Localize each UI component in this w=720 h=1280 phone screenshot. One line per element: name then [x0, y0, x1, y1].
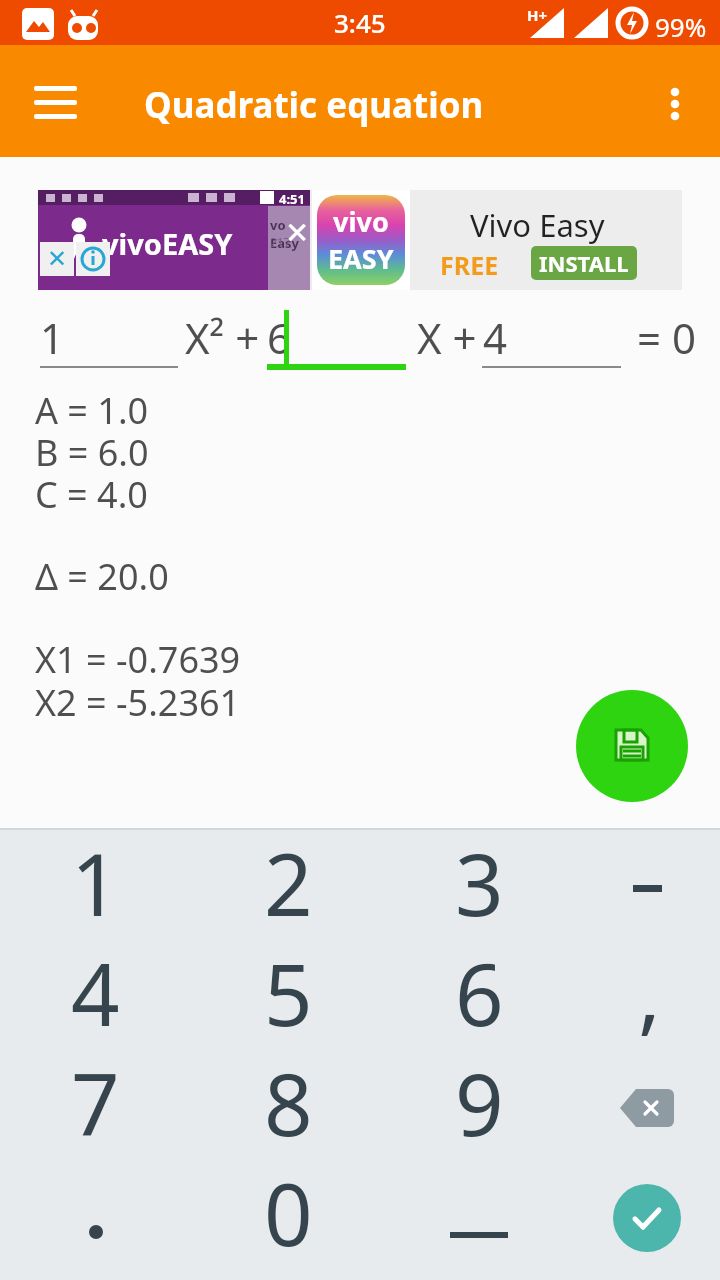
staticText: 8	[264, 1045, 313, 1155]
button[interactable]	[648, 69, 704, 135]
button[interactable]	[40, 1163, 150, 1273]
button[interactable]: ,	[592, 943, 702, 1053]
staticText: vo Easy	[270, 216, 312, 252]
staticText: FREE	[440, 248, 499, 282]
staticText: C = 4.0	[35, 470, 148, 519]
staticText: X² +	[185, 309, 260, 366]
staticText: B = 6.0	[35, 428, 149, 477]
staticText: EASY	[328, 240, 394, 277]
button[interactable]	[592, 833, 702, 943]
staticText: 217	[270, 234, 291, 250]
button[interactable]: 3	[424, 833, 534, 943]
button[interactable]: 1	[40, 833, 150, 943]
staticText: 6	[455, 935, 504, 1045]
staticText: 1	[71, 825, 120, 935]
staticText: 5	[264, 935, 313, 1045]
staticText: 2	[264, 825, 313, 935]
staticText: vivo	[333, 203, 389, 240]
button[interactable]	[576, 690, 688, 802]
staticText: Vivo Easy	[470, 204, 605, 246]
staticText: Quadratic equation	[144, 81, 484, 129]
staticText: ✕	[47, 245, 68, 273]
staticText: 4	[483, 309, 508, 366]
button[interactable]: 4:51	[38, 190, 682, 290]
staticText: 1	[40, 309, 65, 366]
button[interactable]: 4	[40, 943, 150, 1053]
staticText: INSTALL	[539, 248, 629, 278]
staticText: H+	[527, 5, 548, 25]
button[interactable]: 9	[424, 1053, 534, 1163]
button[interactable]: 8	[233, 1053, 343, 1163]
staticText: ,	[638, 934, 661, 1044]
staticText: 4	[71, 935, 120, 1045]
staticText: X1 = -0.7639	[35, 635, 241, 684]
staticText: X +	[417, 309, 477, 366]
staticText: vivoEASY	[102, 224, 233, 263]
staticText: 0	[264, 1155, 313, 1265]
button[interactable]: 7	[40, 1053, 150, 1163]
button[interactable]: INSTALL	[531, 246, 637, 280]
staticText: ✕	[285, 216, 310, 250]
staticText: X2 = -5.2361	[35, 678, 241, 727]
button[interactable]	[24, 83, 88, 127]
staticText: = 0	[637, 309, 696, 366]
staticText: 4:51	[279, 190, 305, 208]
staticText: 99%	[655, 9, 707, 44]
staticText: A = 1.0	[35, 386, 149, 435]
button[interactable]: 5	[233, 943, 343, 1053]
staticText: 6	[267, 309, 292, 366]
staticText: 3	[455, 825, 504, 935]
staticText: Δ = 20.0	[35, 552, 169, 601]
button[interactable]	[592, 1053, 702, 1163]
button[interactable]: 0	[233, 1163, 343, 1273]
button[interactable]: 2	[233, 833, 343, 943]
button[interactable]	[592, 1163, 702, 1273]
button[interactable]: 6	[424, 943, 534, 1053]
staticText: 9	[455, 1045, 504, 1155]
button[interactable]	[424, 1163, 534, 1273]
staticText: 7	[71, 1045, 120, 1155]
staticText: 3:45	[334, 5, 386, 40]
